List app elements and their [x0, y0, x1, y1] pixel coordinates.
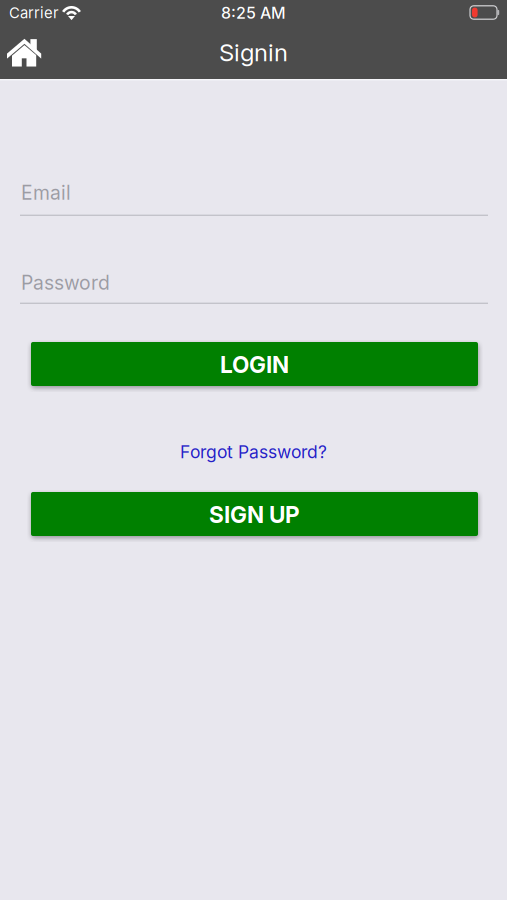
- button[interactable]: LOGIN: [31, 342, 478, 386]
- button[interactable]: SIGN UP: [31, 492, 478, 536]
- staticText: Carrier: [9, 4, 59, 22]
- staticText: SIGN UP: [209, 501, 300, 528]
- staticText: 8:25 AM: [221, 3, 286, 23]
- staticText: Signin: [219, 38, 288, 67]
- button[interactable]: Password: [20, 262, 488, 304]
- staticText: Email: [21, 181, 71, 204]
- button[interactable]: Home: [0, 26, 48, 79]
- button[interactable]: Email: [20, 174, 488, 216]
- staticText: LOGIN: [220, 351, 289, 378]
- staticText: Forgot Password?: [180, 441, 327, 462]
- staticText: Password: [21, 271, 110, 294]
- button[interactable]: Forgot Password?: [153, 439, 353, 465]
